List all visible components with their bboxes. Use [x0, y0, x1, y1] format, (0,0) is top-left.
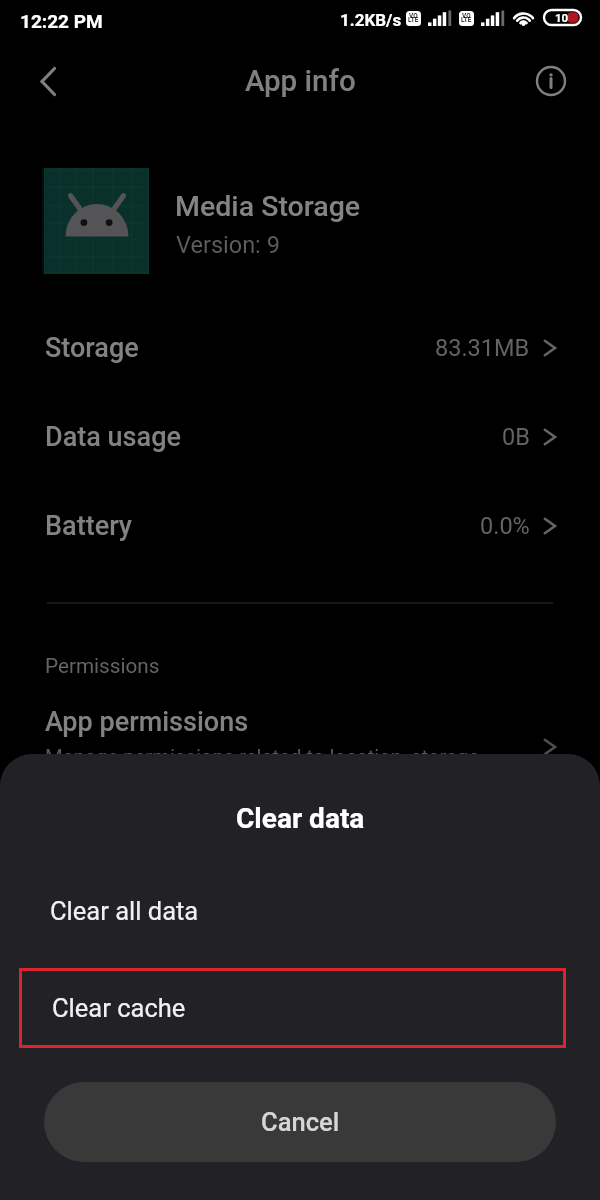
staticText: VO	[462, 12, 471, 20]
staticText: Clear cache	[52, 993, 186, 1023]
staticText: VO	[409, 12, 418, 20]
staticText: 0.0%	[480, 512, 530, 540]
button[interactable]: Cancel	[44, 1082, 556, 1162]
button[interactable]: Back	[24, 57, 72, 105]
staticText: Cancel	[261, 1107, 340, 1137]
button[interactable]: Storage	[0, 304, 600, 393]
button[interactable]: App details	[527, 57, 575, 105]
staticText: 1.2KB/s	[340, 10, 402, 30]
staticText: App permissions	[45, 706, 249, 738]
staticText: Media Storage	[175, 190, 361, 223]
staticText: Clear data	[236, 802, 365, 835]
staticText: 10	[555, 11, 569, 24]
staticText: 0B	[502, 423, 530, 451]
staticText: Clear all data	[50, 896, 199, 926]
button[interactable]: Clear cache	[19, 968, 566, 1048]
button[interactable]: Clear all data	[0, 880, 600, 942]
button[interactable]: Data usage	[0, 393, 600, 482]
staticText: Data usage	[45, 421, 181, 453]
staticText: Permissions	[45, 654, 160, 678]
staticText: Battery	[45, 510, 133, 542]
staticText: 12:22 PM	[20, 10, 103, 32]
staticText: LTE	[408, 16, 419, 24]
staticText: LTE	[461, 16, 472, 24]
button[interactable]: Battery	[0, 482, 600, 571]
staticText: 83.31MB	[435, 334, 530, 362]
staticText: Storage	[45, 332, 139, 364]
staticText: Manage permissions related to location, …	[45, 745, 480, 769]
staticText: App info	[245, 64, 356, 99]
staticText: Version: 9	[176, 231, 280, 259]
